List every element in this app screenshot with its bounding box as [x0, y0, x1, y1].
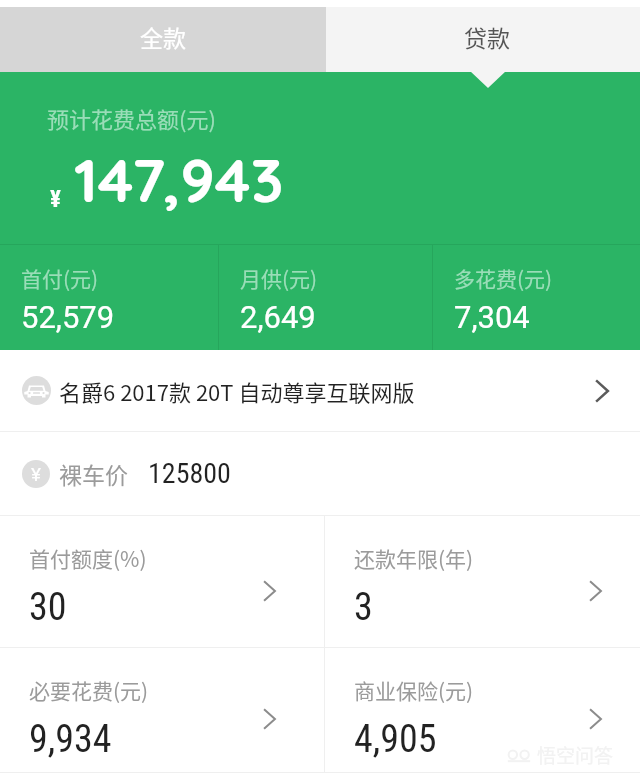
- staticText: 多花费(元): [454, 263, 553, 293]
- other: More: [589, 708, 602, 730]
- button[interactable]: 全款: [0, 7, 326, 72]
- button[interactable]: 还款年限(年): [325, 516, 640, 647]
- button[interactable]: 商业保险(元): [325, 648, 640, 772]
- staticText: 预计花费总额(元): [47, 102, 216, 134]
- button[interactable]: 多花费(元): [433, 245, 640, 350]
- other: More: [263, 580, 276, 602]
- button[interactable]: 名爵6 2017款 20T 自动尊享互联网版: [0, 350, 640, 431]
- button[interactable]: 首付(元): [0, 245, 218, 350]
- staticText: 必要花费(元): [29, 675, 149, 705]
- button[interactable]: 首付额度(%): [0, 516, 324, 647]
- button[interactable]: 必要花费(元): [0, 648, 324, 772]
- button[interactable]: 月供(元): [219, 245, 432, 350]
- staticText: 裸车价: [59, 457, 128, 490]
- staticText: 商业保险(元): [354, 675, 474, 705]
- staticText: 月供(元): [240, 263, 318, 293]
- staticText: 147,943: [74, 141, 284, 217]
- other: More: [589, 580, 602, 602]
- staticText: 贷款: [464, 20, 510, 53]
- staticText: 9,934: [29, 717, 112, 762]
- staticText: 125800: [148, 457, 231, 490]
- staticText: 4,905: [354, 717, 437, 762]
- staticText: 还款年限(年): [354, 543, 474, 573]
- other: More: [595, 379, 609, 403]
- staticText: 全款: [140, 20, 186, 53]
- other: More: [263, 708, 276, 730]
- button[interactable]: 贷款: [326, 7, 640, 72]
- staticText: 30: [29, 585, 67, 630]
- staticText: 7,304: [454, 299, 530, 335]
- staticText: 首付额度(%): [29, 543, 147, 573]
- staticText: 悟空问答: [537, 741, 614, 769]
- staticText: 52,579: [21, 299, 115, 335]
- staticText: 3: [354, 585, 373, 630]
- staticText: 首付(元): [21, 263, 99, 293]
- staticText: ¥: [31, 463, 41, 485]
- button[interactable]: ¥: [0, 432, 640, 515]
- staticText: 名爵6 2017款 20T 自动尊享互联网版: [59, 375, 415, 407]
- staticText: 2,649: [240, 299, 316, 335]
- staticText: ¥: [50, 186, 61, 213]
